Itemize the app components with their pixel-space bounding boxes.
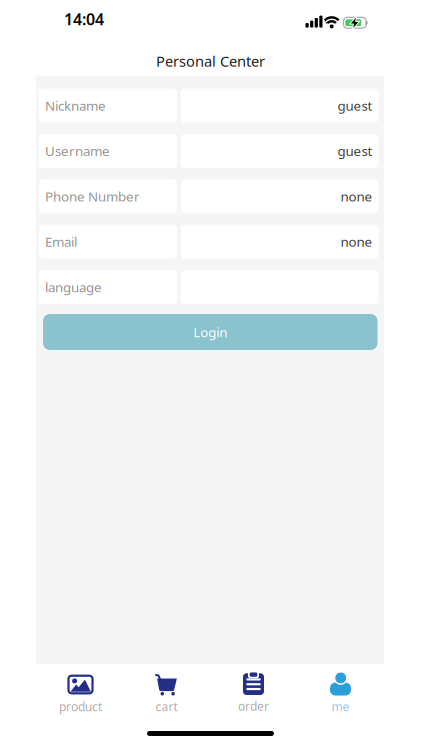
staticText: guest xyxy=(337,142,372,160)
staticText: Login xyxy=(193,323,227,341)
staticText: guest xyxy=(337,97,372,114)
staticText: cart xyxy=(155,698,177,714)
button[interactable]: Phone Number xyxy=(39,179,378,213)
button[interactable]: product xyxy=(37,669,123,719)
staticText: Personal Center xyxy=(156,51,265,71)
button[interactable]: Nickname xyxy=(39,88,378,122)
button[interactable]: Login xyxy=(43,314,378,350)
staticText: 14:04 xyxy=(64,8,104,30)
button[interactable]: Username xyxy=(39,134,378,168)
staticText: language xyxy=(45,278,102,296)
button[interactable]: language xyxy=(39,270,378,304)
staticText: Username xyxy=(45,142,110,160)
staticText: none xyxy=(340,187,372,205)
button[interactable]: Email xyxy=(39,225,378,259)
staticText: Email xyxy=(45,233,77,250)
staticText: me xyxy=(331,698,349,714)
button[interactable]: cart xyxy=(123,669,209,719)
staticText: product xyxy=(59,698,102,714)
staticText: order xyxy=(238,698,269,714)
staticText: Phone Number xyxy=(45,187,140,205)
staticText: Nickname xyxy=(45,97,106,114)
staticText: none xyxy=(340,233,372,250)
button[interactable]: me xyxy=(297,668,383,718)
button[interactable]: order xyxy=(210,667,296,717)
